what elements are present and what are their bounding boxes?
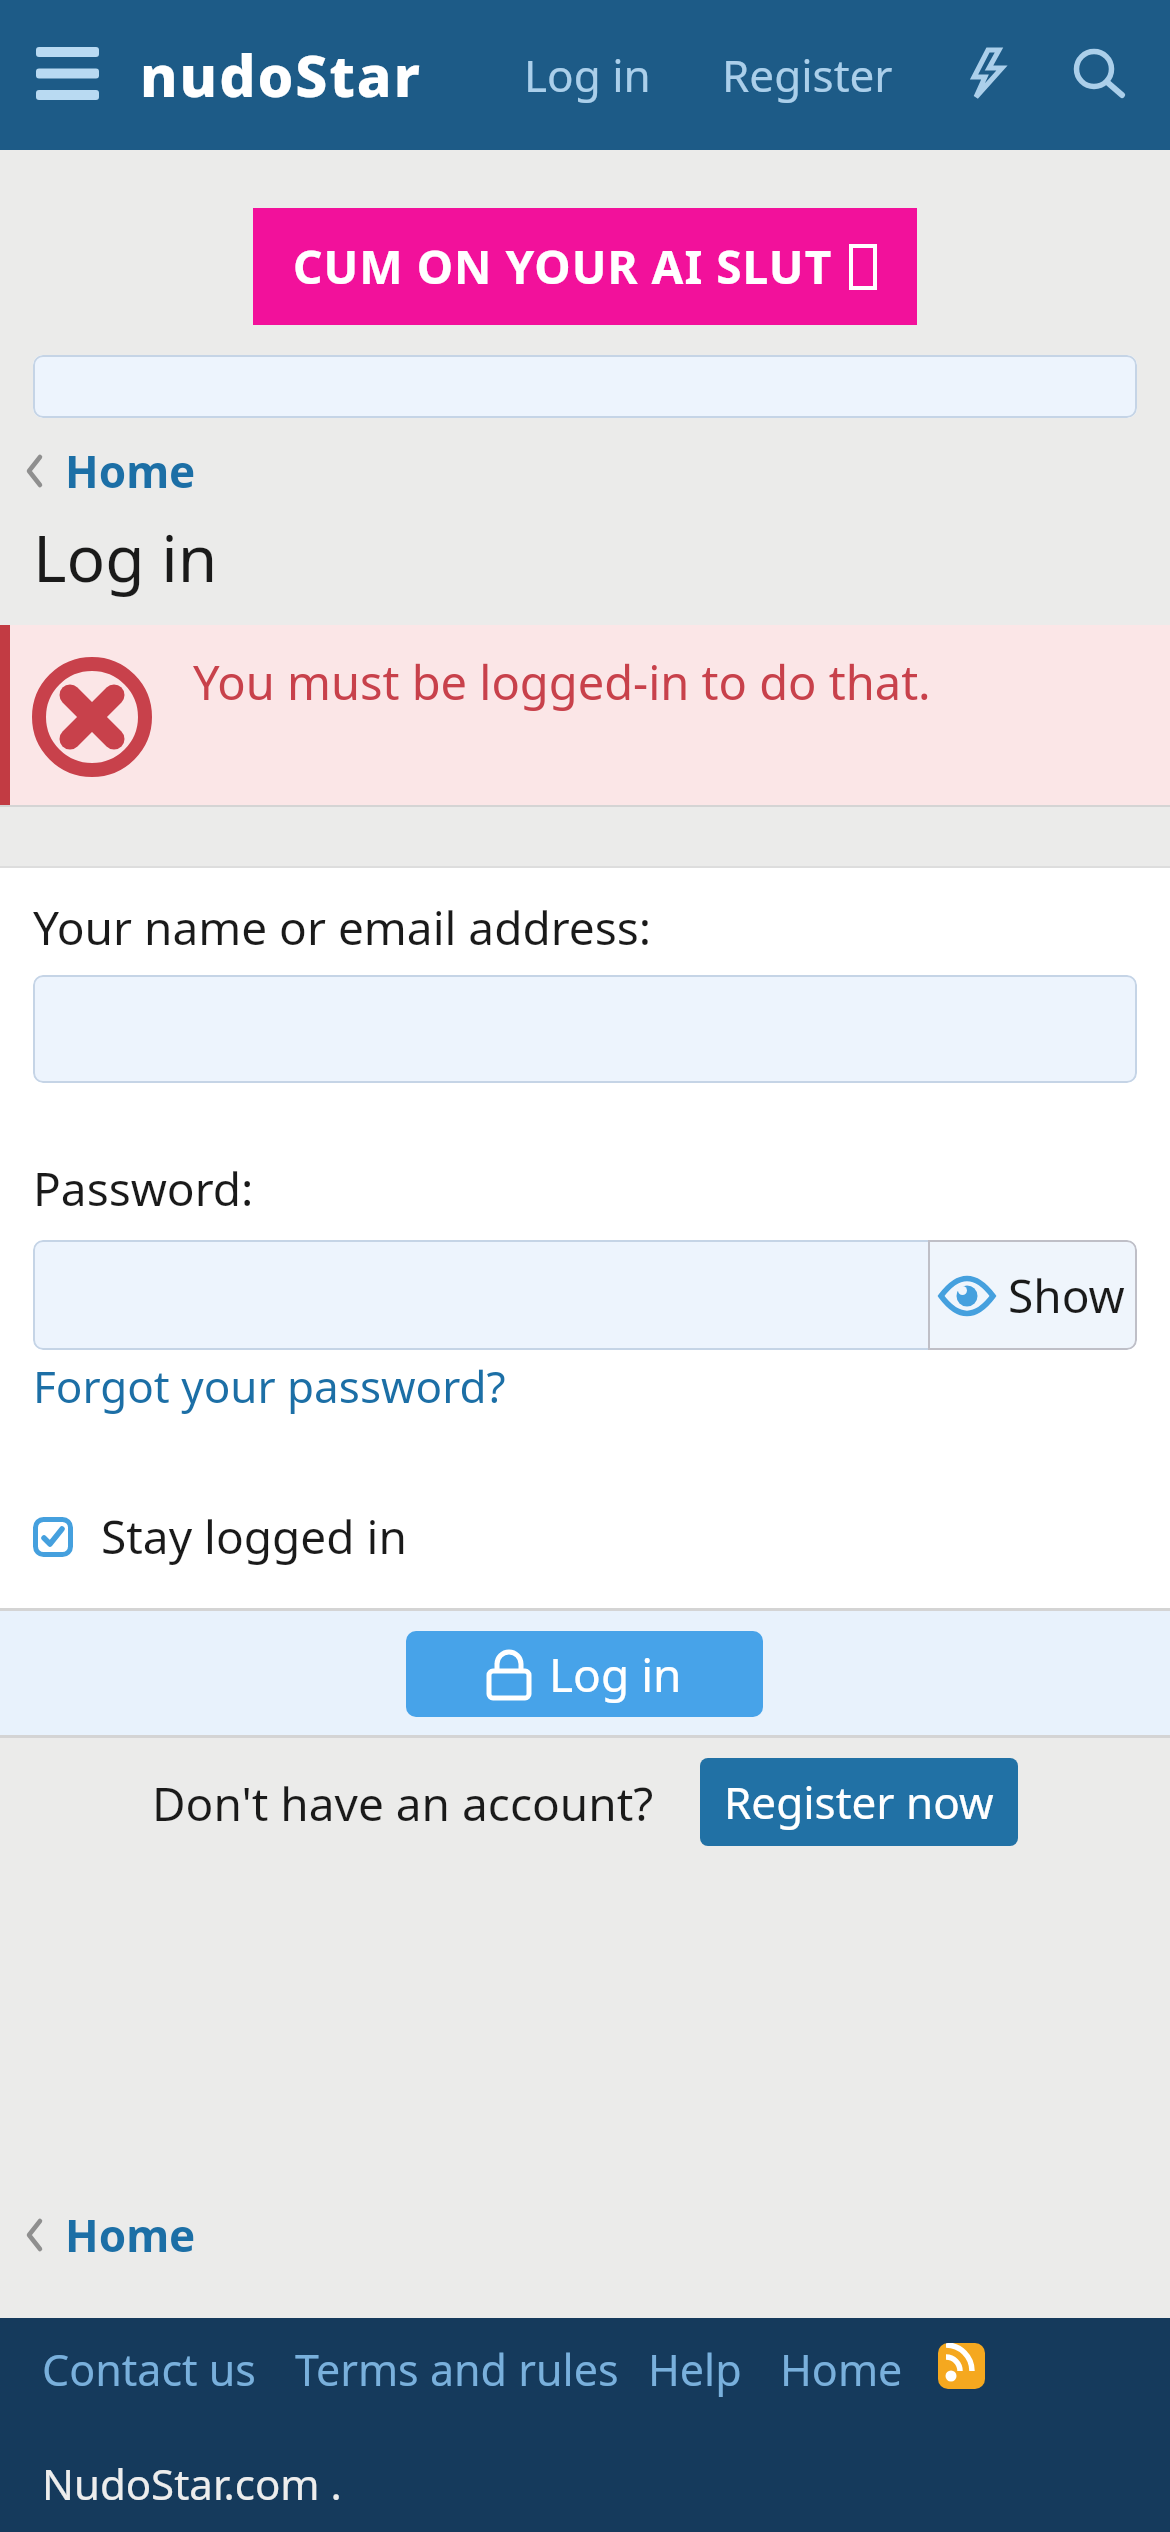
button[interactable] <box>33 355 1137 418</box>
staticText: Log in <box>549 1643 682 1706</box>
button[interactable]: Home <box>25 440 196 502</box>
staticText: CUM ON YOUR AI SLUT <box>293 235 833 298</box>
button[interactable]: Home <box>25 2204 196 2266</box>
staticText: You must be logged-in to do that. <box>193 650 931 714</box>
staticText: NudoStar.com . <box>42 2455 342 2512</box>
button[interactable]: Home <box>780 2340 903 2399</box>
button[interactable]: Log in <box>495 30 680 120</box>
staticText: Log in <box>33 514 218 601</box>
button[interactable]: Show <box>928 1240 1137 1350</box>
staticText: Show <box>1008 1264 1125 1327</box>
button[interactable]: Log in <box>406 1631 763 1717</box>
button[interactable]: Terms and rules <box>295 2340 619 2399</box>
button[interactable]: Register now <box>700 1758 1018 1846</box>
button[interactable] <box>1055 30 1145 120</box>
staticText: Password: <box>33 1157 254 1220</box>
button[interactable] <box>945 30 1030 120</box>
staticText: Home <box>65 2205 196 2265</box>
button[interactable] <box>33 975 1137 1083</box>
staticText: Register <box>722 45 893 105</box>
button[interactable]: Help <box>648 2340 742 2399</box>
staticText: Log in <box>524 45 651 105</box>
button[interactable]: Contact us <box>42 2340 256 2399</box>
button[interactable] <box>938 2343 985 2389</box>
button[interactable]: Register <box>690 30 925 120</box>
button[interactable]: Stay logged in <box>33 1505 407 1568</box>
staticText: Your name or email address: <box>33 896 652 959</box>
button[interactable] <box>30 40 106 108</box>
button[interactable]: Forgot your password? <box>33 1356 506 1416</box>
button[interactable]: nudoStar <box>140 36 422 114</box>
staticText: Home <box>65 441 196 501</box>
button[interactable]: CUM ON YOUR AI SLUT <box>253 208 917 325</box>
staticText: Don't have an account? <box>152 1772 654 1835</box>
button[interactable] <box>33 1240 930 1350</box>
staticText: Register now <box>724 1772 994 1832</box>
staticText: Stay logged in <box>101 1505 407 1568</box>
